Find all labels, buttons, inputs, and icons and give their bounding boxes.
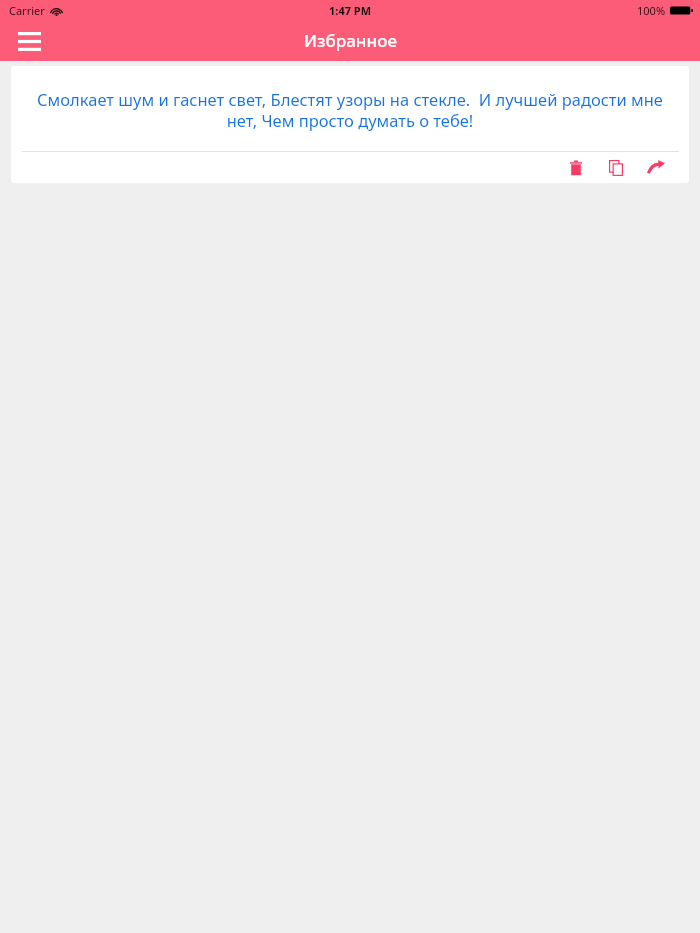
staticText: 100% <box>637 3 666 18</box>
staticText: 1:47 PM <box>329 3 372 18</box>
staticText: Смолкает шум и гаснет свет, Блестят узор… <box>23 88 677 132</box>
staticText: Carrier <box>9 3 45 18</box>
button[interactable]: Copy <box>599 152 633 183</box>
button[interactable]: Menu <box>8 22 50 60</box>
staticText: Избранное <box>304 29 397 52</box>
button[interactable]: Share <box>639 152 673 183</box>
button[interactable]: Delete <box>559 152 593 183</box>
button[interactable]: Смолкает шум и гаснет свет, Блестят узор… <box>11 66 689 183</box>
